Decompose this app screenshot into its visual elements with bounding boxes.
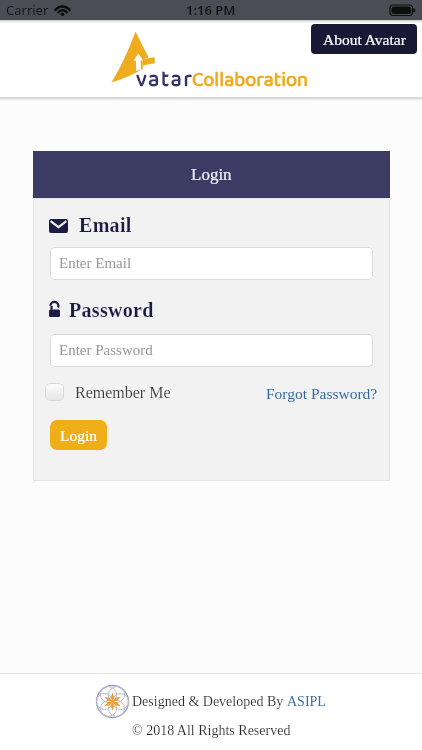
staticText: vatar [136,62,194,97]
staticText: Password [69,299,154,321]
staticText: About Avatar [323,31,406,48]
button[interactable] [45,383,64,401]
staticText: Enter Email [59,255,132,272]
staticText: Enter Password [59,342,153,359]
staticText: Carrier [6,1,49,19]
staticText: 1:16 PM [186,1,236,19]
staticText: Email [79,214,132,236]
staticText: Login [191,165,232,184]
button[interactable]: Enter Password [50,334,373,367]
staticText: Designed & Developed By [132,694,287,710]
staticText: Collaboration [192,64,309,96]
staticText: © 2018 All Rights Reserved [132,723,291,739]
staticText: Login [60,427,98,444]
button[interactable]: About Avatar [311,24,417,54]
button[interactable]: ASIPL [287,694,326,710]
staticText: Remember Me [75,384,171,402]
button[interactable]: Forgot Password? [266,385,378,402]
button[interactable]: Enter Email [50,247,373,280]
button[interactable]: Login [50,420,107,450]
